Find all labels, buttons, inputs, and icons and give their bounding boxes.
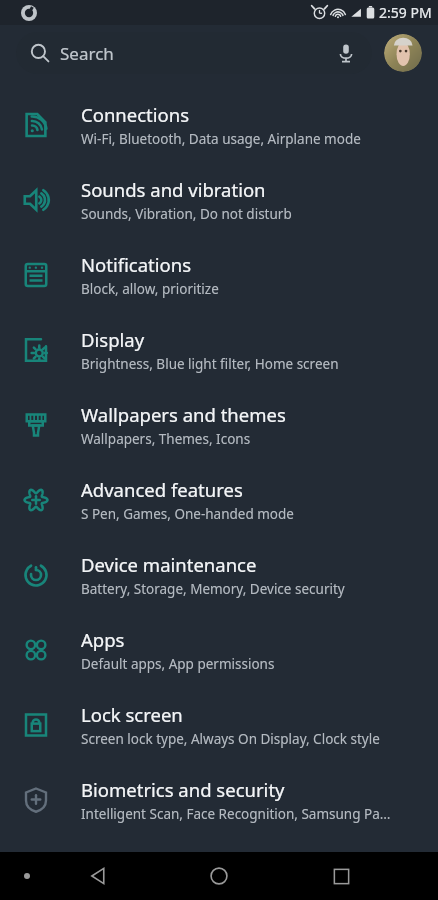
- staticText: Connections: [81, 102, 190, 127]
- staticText: Wallpapers, Themes, Icons: [81, 430, 251, 448]
- button[interactable]: Wallpapers and themes: [0, 387, 438, 462]
- staticText: Screen lock type, Always On Display, Clo…: [81, 730, 380, 748]
- staticText: Sounds and vibration: [81, 177, 266, 202]
- button[interactable]: Hide keyboard: [14, 863, 40, 889]
- button[interactable]: Apps: [0, 612, 438, 687]
- button[interactable]: Connections: [0, 87, 438, 162]
- button[interactable]: Device maintenance: [0, 537, 438, 612]
- button[interactable]: Notifications: [0, 237, 438, 312]
- button[interactable]: Biometrics and security: [0, 762, 438, 837]
- staticText: Brightness, Blue light filter, Home scre…: [81, 355, 339, 373]
- staticText: Intelligent Scan, Face Recognition, Sams…: [81, 805, 391, 823]
- button[interactable]: Display: [0, 312, 438, 387]
- staticText: 2:59 PM: [379, 3, 432, 22]
- button[interactable]: Voice search: [334, 41, 358, 65]
- button[interactable]: Home: [201, 858, 237, 894]
- staticText: Advanced features: [81, 477, 243, 502]
- staticText: Device maintenance: [81, 552, 257, 577]
- button[interactable]: Recent apps: [323, 858, 359, 894]
- staticText: Wallpapers and themes: [81, 402, 286, 427]
- staticText: Wi-Fi, Bluetooth, Data usage, Airplane m…: [81, 130, 361, 148]
- button[interactable]: Back: [80, 858, 116, 894]
- staticText: Display: [81, 327, 145, 352]
- staticText: Apps: [81, 627, 125, 652]
- staticText: Search: [60, 42, 114, 65]
- staticText: Sounds, Vibration, Do not disturb: [81, 205, 292, 223]
- button[interactable]: Account: [384, 34, 422, 72]
- staticText: Biometrics and security: [81, 777, 285, 802]
- button[interactable]: Advanced features: [0, 462, 438, 537]
- button[interactable]: Search: [16, 32, 372, 74]
- staticText: Default apps, App permissions: [81, 655, 275, 673]
- staticText: Notifications: [81, 252, 192, 277]
- staticText: S Pen, Games, One-handed mode: [81, 505, 294, 523]
- staticText: Block, allow, prioritize: [81, 280, 219, 298]
- button[interactable]: Sounds and vibration: [0, 162, 438, 237]
- staticText: Battery, Storage, Memory, Device securit…: [81, 580, 345, 598]
- button[interactable]: Lock screen: [0, 687, 438, 762]
- staticText: Lock screen: [81, 702, 183, 727]
